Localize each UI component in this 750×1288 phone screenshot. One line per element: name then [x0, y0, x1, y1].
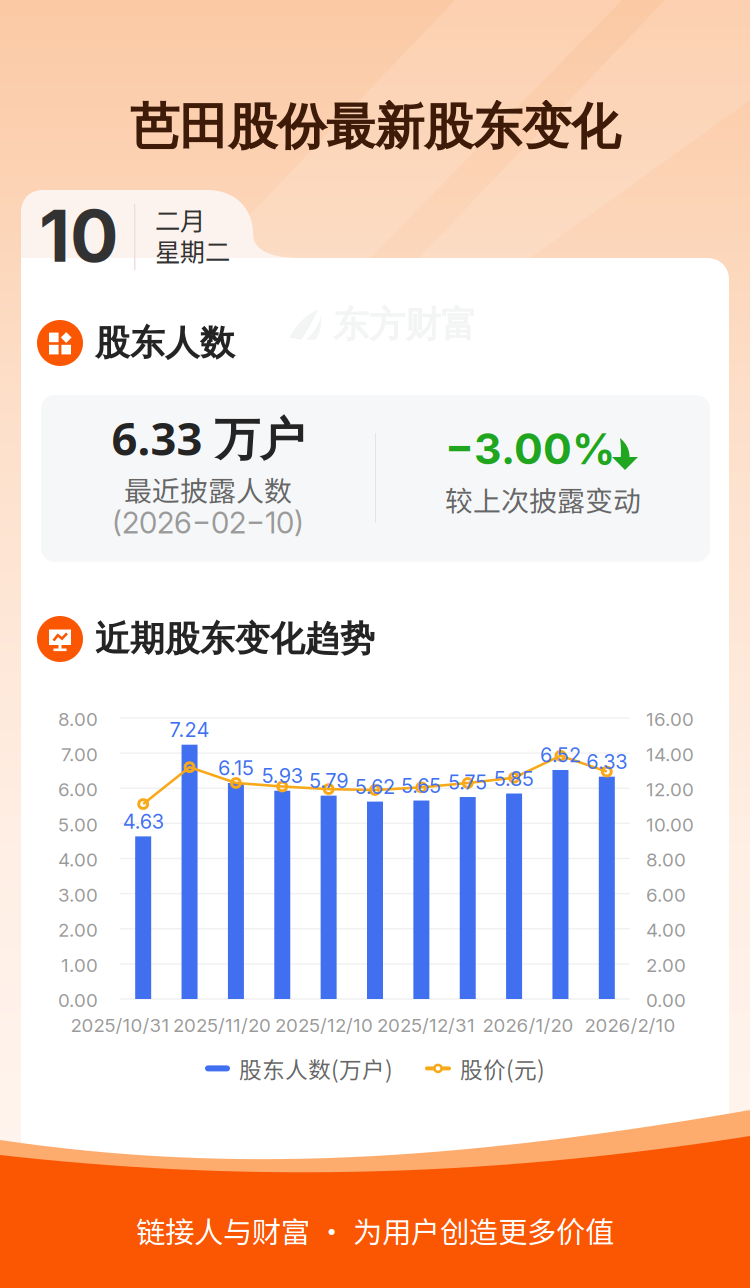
staticText: 5.00 — [58, 813, 98, 836]
staticText: 7.00 — [61, 743, 98, 766]
staticText: 2025/12/10 — [275, 1014, 373, 1037]
staticText: 2026/2/10 — [584, 1014, 675, 1037]
staticText: 芭田股份最新股东变化 — [130, 96, 620, 158]
staticText: 14.00 — [646, 743, 694, 766]
staticText: 5.93 — [262, 764, 303, 788]
staticText: 0.00 — [58, 989, 98, 1012]
staticText: 6.00 — [58, 778, 98, 801]
staticText: 6.52 — [540, 743, 581, 767]
staticText: 7.24 — [169, 718, 209, 742]
staticText: 链接人与财富 · 为用户创造更多价值 — [136, 1209, 614, 1251]
staticText: 2.00 — [646, 954, 686, 976]
staticText: 较上次披露变动 — [445, 479, 641, 519]
staticText: 4.63 — [123, 809, 164, 834]
staticText: 1.00 — [61, 954, 98, 976]
staticText: 16.00 — [646, 708, 694, 731]
staticText: 5.65 — [401, 773, 441, 798]
staticText: 5.79 — [309, 769, 348, 793]
staticText: 2025/10/31 — [70, 1014, 169, 1037]
staticText: 2026/1/20 — [482, 1014, 573, 1037]
staticText: 6.33 万户 — [111, 407, 304, 469]
staticText: 8.00 — [646, 848, 686, 871]
staticText: 二月 — [155, 201, 205, 238]
staticText: 最近披露人数 — [124, 469, 292, 509]
staticText: 3.00 — [58, 884, 98, 906]
staticText: 12.00 — [646, 778, 694, 801]
staticText: 2025/12/31 — [377, 1014, 475, 1037]
staticText: 5.85 — [494, 766, 534, 791]
staticText: 股东人数(万户) — [239, 1052, 393, 1085]
staticText: 4.00 — [646, 919, 686, 941]
staticText: 6.00 — [646, 884, 686, 906]
staticText: 5.62 — [355, 775, 395, 799]
staticText: 0.00 — [646, 989, 686, 1012]
staticText: 6.33 — [586, 750, 627, 774]
staticText: 东方财富 — [333, 302, 477, 347]
staticText: 2.00 — [58, 919, 98, 941]
staticText: 股价(元) — [460, 1052, 545, 1085]
staticText: −3.00% — [445, 423, 615, 475]
staticText: 8.00 — [58, 708, 98, 731]
staticText: (2026−02−10) — [112, 505, 304, 540]
staticText: 星期二 — [155, 232, 230, 269]
staticText: 4.00 — [58, 848, 98, 871]
staticText: 10 — [39, 192, 119, 279]
staticText: 2025/11/20 — [173, 1014, 271, 1037]
staticText: 股东人数 — [95, 321, 235, 365]
staticText: 10.00 — [646, 813, 694, 836]
staticText: 近期股东变化趋势 — [95, 617, 375, 661]
staticText: 6.15 — [218, 756, 254, 780]
staticText: 5.75 — [448, 770, 487, 794]
